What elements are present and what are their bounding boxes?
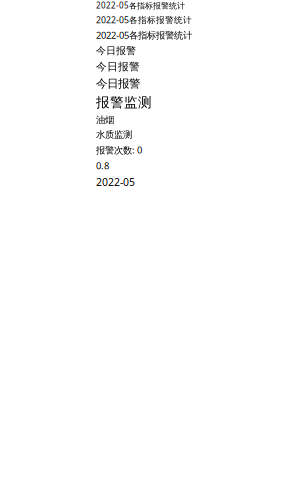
staticText: 报警监测 [96,94,152,111]
staticText: 水质监测 [96,129,132,141]
staticText: 油烟 [96,114,114,126]
staticText: 2022-05各指标报警统计 [96,0,185,11]
staticText: 2022-05各指标报警统计 [96,14,192,26]
staticText: 今日报警 [96,44,136,57]
staticText: 0.8 [96,159,109,172]
staticText: 今日报警 [96,76,140,91]
staticText: 2022-05各指标报警统计 [96,29,192,41]
staticText: 报警次数: 0 [96,143,142,156]
staticText: 今日报警 [96,60,140,73]
staticText: 2022-05 [96,175,135,189]
